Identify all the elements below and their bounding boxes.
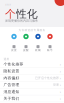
staticText: 通用 [3, 57, 9, 61]
button[interactable]: 客服 [44, 33, 56, 39]
button[interactable]: 设置 [8, 45, 20, 52]
button[interactable]: 隐私设置 [0, 68, 64, 75]
staticText: 广告管理 [3, 82, 19, 87]
staticText: 个性化推荐 [3, 62, 23, 67]
staticText: › [60, 89, 61, 94]
staticText: › [60, 82, 61, 87]
button[interactable]: 个性化推荐 [0, 61, 64, 68]
staticText: 隐私设置 [3, 69, 19, 73]
button[interactable]: 广告管理 [0, 81, 64, 88]
staticText: 管理 [53, 83, 59, 87]
button[interactable]: 订单 [32, 33, 44, 39]
staticText: › [60, 61, 61, 67]
staticText: 内容偏好 [3, 76, 19, 80]
staticText: 账号 [47, 48, 53, 52]
staticText: › [60, 75, 61, 81]
staticText: 发现更懂你的内容与服务 [5, 19, 38, 23]
staticText: ““ [5, 2, 11, 11]
staticText: › [60, 68, 61, 74]
button[interactable]: 消息通知 [0, 88, 64, 95]
button[interactable]: 钱包 [20, 33, 32, 39]
staticText: 收藏 [35, 48, 41, 52]
staticText: 设置 [11, 48, 17, 52]
button[interactable]: 会员 [8, 33, 20, 39]
staticText: 提醒 [23, 48, 29, 52]
staticText: 关于我们 [3, 96, 19, 101]
button[interactable]: 收藏 [32, 45, 44, 52]
button[interactable]: 关于我们 [0, 95, 64, 102]
staticText: 消息通知 [3, 89, 19, 94]
button[interactable]: 提醒 [20, 45, 32, 52]
button[interactable]: 内容偏好 [0, 75, 64, 81]
staticText: 性化 [16, 7, 38, 21]
button[interactable]: 账号 [44, 45, 56, 52]
staticText: 已开启个性化推荐 [35, 76, 59, 80]
staticText: 个 [5, 7, 16, 21]
staticText: › [60, 96, 61, 101]
staticText: 为你精选的专属服务 [18, 28, 45, 32]
